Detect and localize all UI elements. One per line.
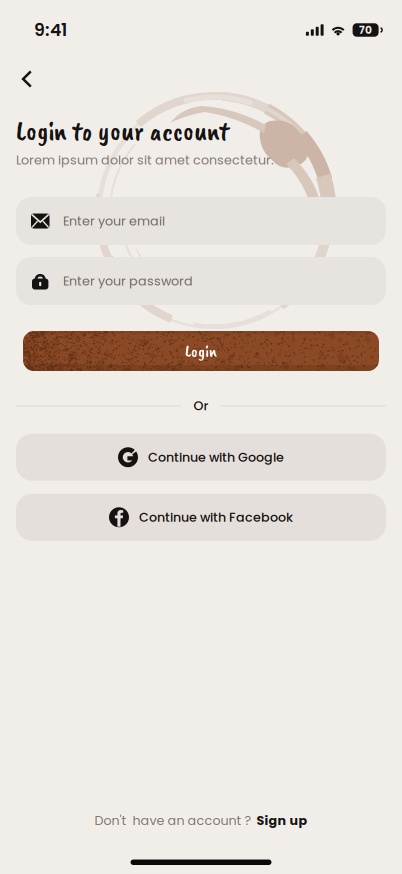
staticText: Don't have an account ? — [94, 812, 251, 829]
button[interactable]: Continue with Facebook — [16, 494, 386, 541]
staticText: 70 — [359, 22, 372, 37]
button[interactable]: Enter your email — [16, 197, 386, 245]
button[interactable]: Login — [23, 331, 379, 371]
staticText: Enter your email — [63, 212, 165, 230]
staticText: Lorem ipsum dolor sit amet consectetur. — [16, 151, 274, 169]
staticText: Enter your password — [63, 272, 193, 290]
staticText: Sign up — [256, 812, 307, 829]
button[interactable]: Back — [5, 64, 49, 94]
button[interactable]: Don't have an account ? — [94, 812, 307, 829]
button[interactable]: Enter your password — [16, 257, 386, 305]
staticText: Continue with Facebook — [139, 508, 293, 526]
staticText: Login — [185, 340, 217, 362]
staticText: Login to your account — [16, 113, 229, 148]
staticText: Continue with Google — [148, 448, 284, 466]
staticText: 9:41 — [34, 18, 67, 42]
button[interactable]: Continue with Google — [16, 434, 386, 481]
staticText: Or — [193, 397, 208, 415]
